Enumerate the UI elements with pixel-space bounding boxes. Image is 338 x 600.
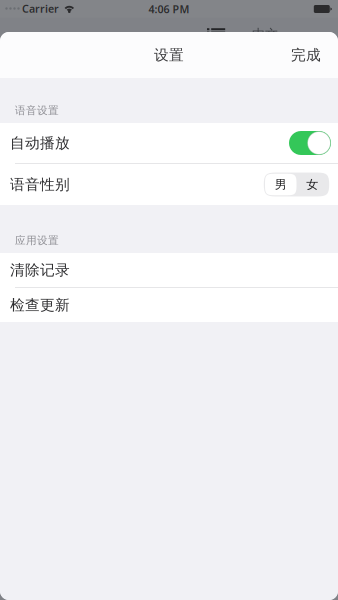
staticText: 4:06 PM [148,2,189,16]
button[interactable]: 女 [296,174,328,195]
staticText: 设置 [154,46,184,64]
staticText: 清除记录 [10,261,70,279]
staticText: 男 [275,177,287,192]
button[interactable]: 完成 [281,32,331,78]
staticText: 检查更新 [10,296,70,314]
staticText: 女 [306,177,318,192]
staticText: 自动播放 [10,134,70,152]
button[interactable]: 自动播放 [0,123,338,163]
staticText: 完成 [291,46,321,64]
button[interactable]: 检查更新 [0,288,338,322]
staticText: 中文 [252,26,278,43]
staticText: 应用设置 [15,234,59,247]
staticText: Carrier [22,1,59,16]
button[interactable]: 清除记录 [0,253,338,287]
button[interactable]: 男 [265,174,296,195]
staticText: 语音性别 [10,175,70,193]
staticText: 语音设置 [15,104,59,117]
